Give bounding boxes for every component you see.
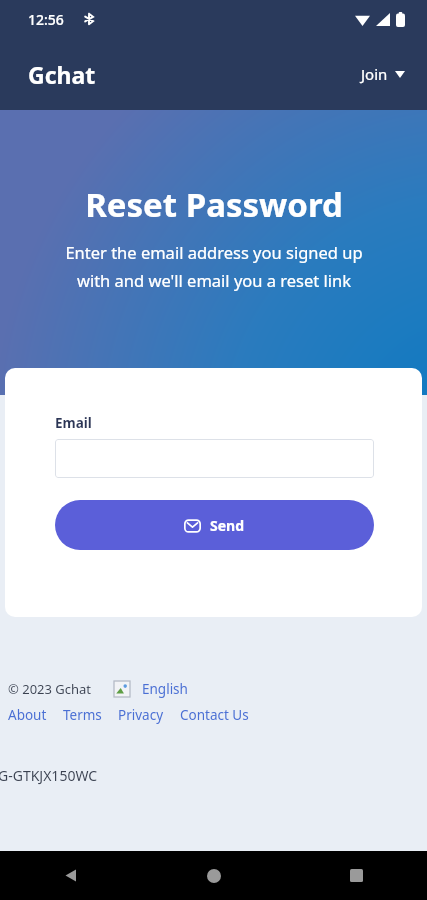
- staticText: Join: [361, 64, 388, 84]
- button[interactable]: Terms: [63, 704, 102, 726]
- staticText: G-GTKJX150WC: [0, 766, 98, 785]
- button[interactable]: Contact Us: [180, 704, 249, 726]
- button[interactable]: [55, 439, 374, 478]
- button[interactable]: Join: [351, 56, 415, 92]
- staticText: English: [142, 680, 188, 698]
- button[interactable]: Recent apps: [285, 851, 427, 900]
- staticText: Email: [55, 414, 92, 432]
- staticText: 12:56: [28, 10, 64, 29]
- staticText: Enter the email address you signed up wi…: [65, 241, 363, 292]
- button[interactable]: Gchat: [20, 53, 104, 96]
- staticText: © 2023 Gchat: [8, 680, 92, 698]
- other: Language flag: [114, 681, 130, 697]
- staticText: Send: [210, 516, 245, 535]
- button[interactable]: Back: [0, 851, 143, 900]
- button[interactable]: Language flag: [114, 678, 188, 700]
- button[interactable]: Privacy: [118, 704, 164, 726]
- button[interactable]: Home: [143, 851, 285, 900]
- button[interactable]: Send: [55, 500, 374, 550]
- button[interactable]: About: [8, 704, 47, 726]
- staticText: Reset Password: [85, 182, 343, 227]
